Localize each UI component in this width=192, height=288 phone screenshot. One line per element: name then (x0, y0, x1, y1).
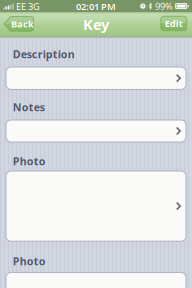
staticText: EE (16, 0, 26, 13)
staticText: Key (83, 14, 109, 34)
button[interactable] (6, 67, 186, 89)
staticText: Photo (13, 154, 46, 168)
staticText: Edit (165, 17, 183, 30)
button[interactable] (6, 120, 186, 142)
button[interactable] (6, 272, 186, 288)
staticText: Photo (13, 254, 46, 268)
staticText: Back (11, 18, 34, 30)
staticText: 99% (155, 0, 173, 12)
staticText: 3G (28, 0, 40, 13)
staticText: Description (13, 47, 75, 61)
button[interactable] (6, 171, 186, 241)
button[interactable]: Back (3, 17, 33, 31)
button[interactable]: Edit (161, 16, 187, 31)
staticText: Notes (13, 100, 45, 114)
staticText: 02:01 PM (76, 0, 116, 13)
